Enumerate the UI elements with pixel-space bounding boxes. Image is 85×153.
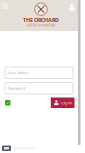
- button[interactable]: Remember me: [5, 100, 10, 105]
- staticText: ✓: [6, 100, 9, 105]
- staticText: Golf & Country Club: [26, 23, 55, 27]
- staticText: User Name: [8, 70, 29, 75]
- staticText: Password: [8, 86, 25, 91]
- staticText: Log on: [60, 100, 71, 105]
- button[interactable]: Account: [66, 1, 78, 11]
- staticText: THE ORCHARD: [23, 16, 59, 23]
- button[interactable]: Log on: [51, 97, 74, 108]
- button[interactable]: Menu: [0, 0, 11, 12]
